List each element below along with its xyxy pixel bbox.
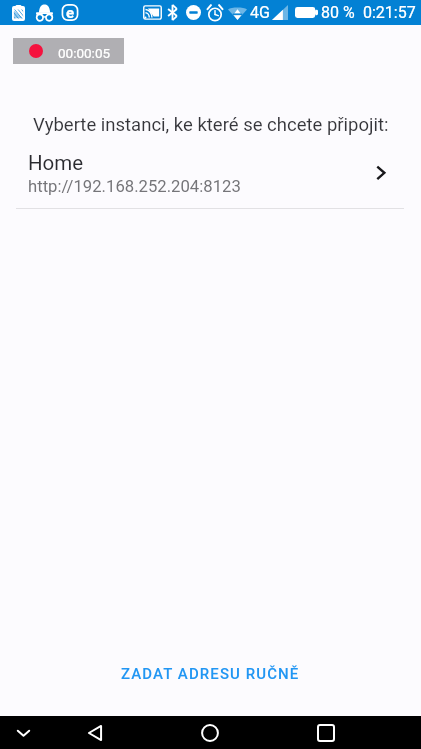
staticText: ZADAT ADRESU RUČNĚ: [121, 665, 300, 683]
staticText: http://192.168.252.204:8123: [28, 177, 241, 197]
button[interactable]: Recents: [308, 716, 344, 749]
staticText: e: [66, 4, 75, 21]
staticText: 4G: [250, 3, 270, 22]
staticText: Vyberte instanci, ke které se chcete při…: [33, 114, 389, 136]
button[interactable]: ZADAT ADRESU RUČNĚ: [0, 652, 421, 696]
button[interactable]: Hide keyboard: [5, 716, 41, 749]
staticText: 0:21:57: [363, 3, 416, 22]
button[interactable]: Back: [77, 716, 113, 749]
staticText: 00:00:05: [58, 45, 111, 61]
staticText: 80 %: [321, 3, 355, 22]
button[interactable]: Home: [192, 716, 228, 749]
staticText: Home: [28, 151, 84, 175]
button[interactable]: Home: [0, 146, 421, 203]
